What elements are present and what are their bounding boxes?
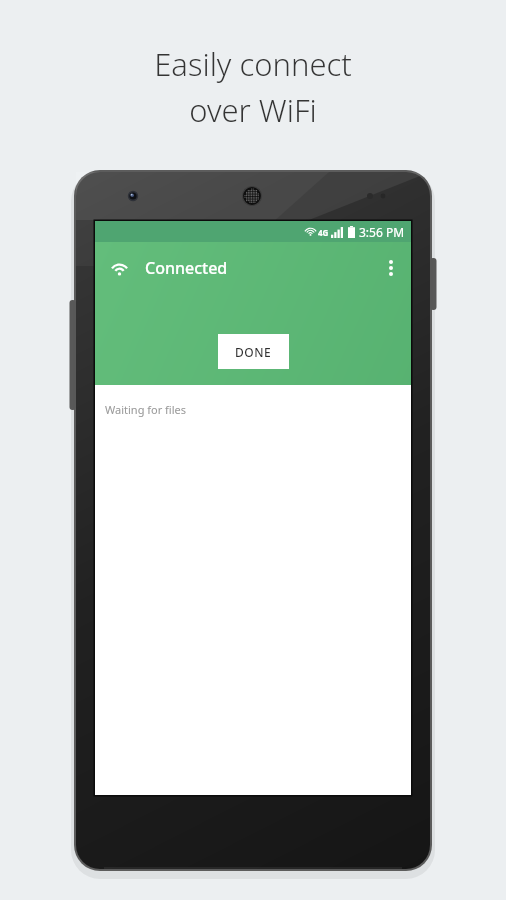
staticText: Waiting for files	[105, 402, 187, 417]
staticText: 4G	[318, 227, 329, 238]
staticText: DONE	[235, 344, 272, 360]
staticText: Connected	[145, 257, 228, 279]
button[interactable]: More options	[376, 253, 406, 283]
button[interactable]: DONE	[218, 334, 289, 369]
button[interactable]: Wi-Fi connected	[106, 255, 132, 281]
staticText: Easily connect	[154, 43, 352, 85]
staticText: 3:56 PM	[359, 224, 405, 240]
staticText: over WiFi	[189, 89, 317, 131]
